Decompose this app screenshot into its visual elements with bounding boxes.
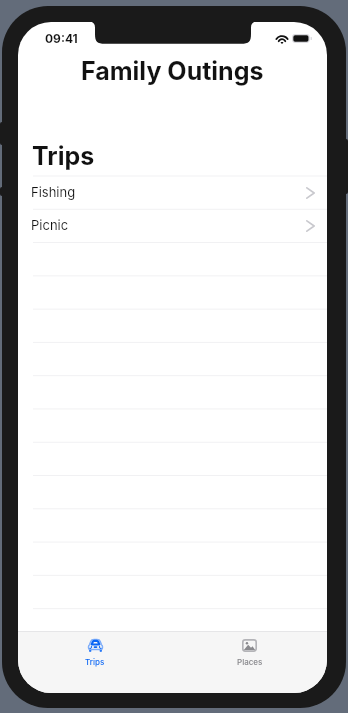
staticText: Places (237, 657, 263, 667)
staticText: Picnic (31, 217, 69, 233)
staticText: 09:41 (45, 31, 78, 46)
button[interactable]: Places (172, 632, 327, 693)
staticText: Trips (85, 657, 105, 667)
staticText: Family Outings (81, 56, 264, 86)
other: Battery (292, 34, 312, 43)
button[interactable]: Picnic (18, 208, 327, 241)
button[interactable]: Fishing (18, 175, 327, 208)
button[interactable]: Trips (18, 632, 172, 693)
staticText: Fishing (31, 184, 76, 200)
other: Wi-Fi (276, 34, 288, 43)
staticText: Trips (32, 141, 95, 171)
